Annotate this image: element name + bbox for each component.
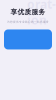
staticText: decoration bbox=[27, 0, 56, 28]
staticText: 享优质服务 bbox=[10, 8, 45, 16]
staticText: 为您提供专业贴心的一站式服务 bbox=[7, 20, 49, 23]
